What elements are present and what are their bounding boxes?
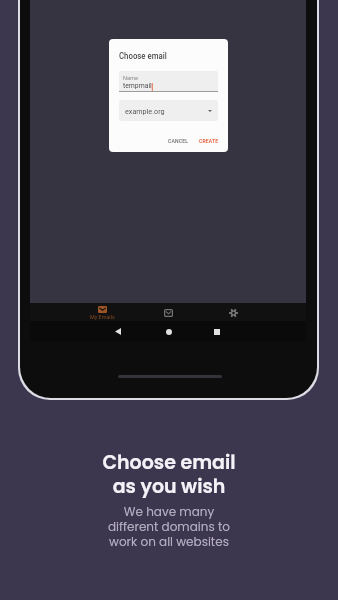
button[interactable]: CANCEL: [164, 135, 195, 148]
button[interactable]: My Emails: [74, 303, 130, 321]
button[interactable]: Home: [160, 321, 178, 342]
staticText: CREATE: [199, 138, 219, 145]
button[interactable]: example.org: [119, 100, 218, 121]
button[interactable]: CREATE: [195, 135, 225, 148]
button[interactable]: Recents: [208, 321, 226, 342]
staticText: My Emails: [90, 314, 115, 320]
button[interactable]: Back: [109, 321, 127, 342]
staticText: CANCEL: [168, 138, 189, 145]
staticText: Choose email: [119, 50, 167, 61]
staticText: Choose email as you wish: [102, 449, 236, 499]
button[interactable]: Inbox: [142, 303, 194, 321]
staticText: example.org: [125, 107, 165, 115]
button[interactable]: Settings: [207, 303, 259, 321]
button[interactable]: Name: [119, 71, 218, 92]
staticText: tempmail: [123, 81, 152, 90]
staticText: We have many different domains to work o…: [108, 503, 230, 550]
staticText: Name: [123, 75, 138, 82]
